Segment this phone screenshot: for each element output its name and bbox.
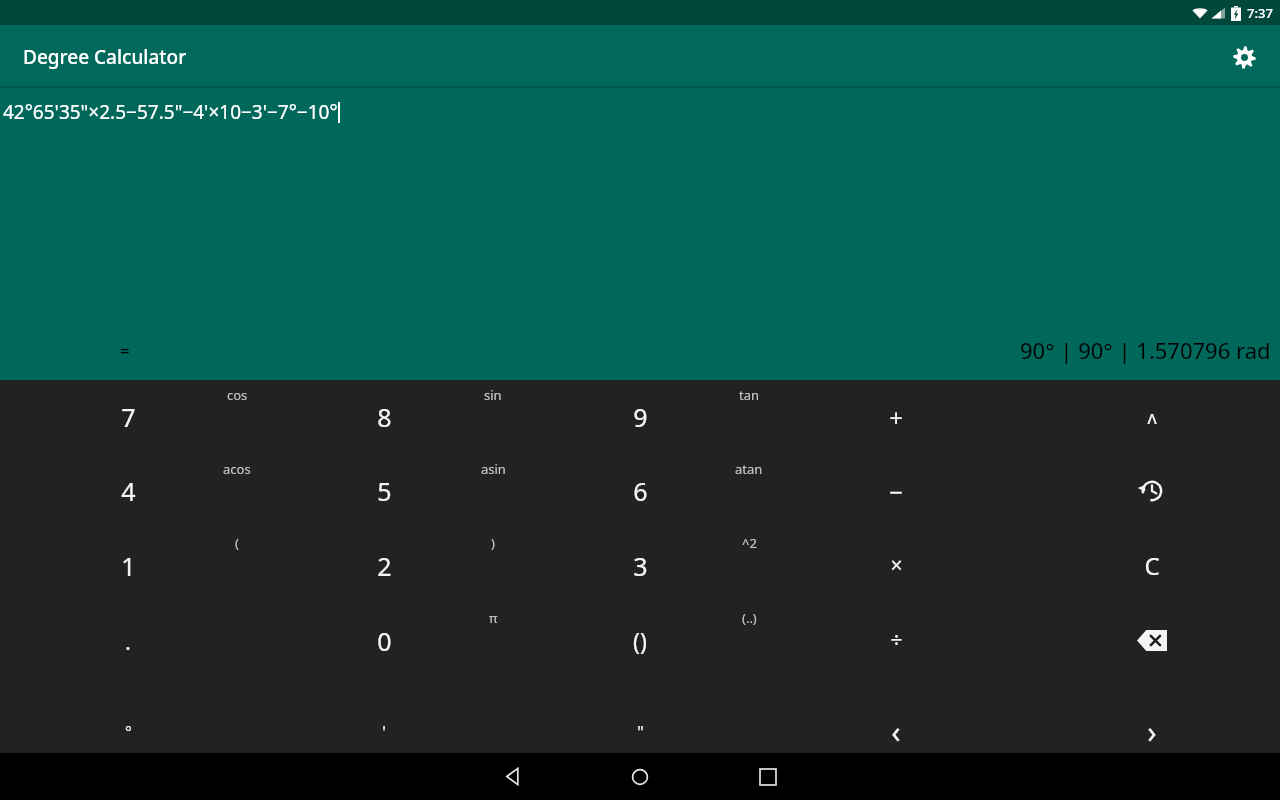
button[interactable]: . bbox=[0, 603, 256, 678]
button[interactable]: ° bbox=[0, 678, 256, 753]
button[interactable]: ʌ bbox=[1024, 380, 1280, 454]
staticText: sin bbox=[484, 386, 502, 404]
staticText: 8 bbox=[377, 400, 392, 434]
staticText: 7:37 bbox=[1247, 4, 1273, 22]
button[interactable]: sin bbox=[256, 380, 512, 454]
button[interactable]: π bbox=[256, 603, 512, 678]
staticText: ÷ bbox=[890, 626, 903, 655]
staticText: 7 bbox=[121, 400, 136, 434]
staticText: () bbox=[633, 625, 647, 656]
button[interactable]: − bbox=[768, 454, 1024, 528]
staticText: asin bbox=[481, 460, 506, 478]
staticText: ' bbox=[382, 721, 386, 743]
staticText: . bbox=[125, 626, 131, 656]
button[interactable]: ' bbox=[256, 678, 512, 753]
staticText: 2 bbox=[377, 549, 392, 583]
staticText: ^2 bbox=[742, 534, 757, 552]
staticText: × bbox=[890, 551, 903, 580]
button[interactable]: tan bbox=[512, 380, 768, 454]
button[interactable]: ÷ bbox=[768, 603, 1024, 678]
staticText: tan bbox=[739, 386, 760, 404]
button[interactable]: atan bbox=[512, 454, 768, 528]
button[interactable]: × bbox=[768, 528, 1024, 603]
button[interactable]: + bbox=[768, 380, 1024, 454]
staticText: ° bbox=[125, 721, 132, 743]
button[interactable]: ( bbox=[0, 528, 256, 603]
staticText: 3 bbox=[633, 549, 648, 583]
staticText: atan bbox=[735, 460, 763, 478]
button[interactable]: asin bbox=[256, 454, 512, 528]
staticText: π bbox=[489, 609, 498, 627]
staticText: 4 bbox=[121, 474, 136, 508]
staticText: " bbox=[637, 721, 644, 743]
button[interactable]: cos bbox=[0, 380, 256, 454]
staticText: C bbox=[1144, 549, 1160, 582]
staticText: 0 bbox=[377, 624, 392, 658]
staticText: 9 bbox=[633, 400, 648, 434]
staticText: + bbox=[889, 401, 903, 434]
staticText: = bbox=[120, 339, 130, 362]
button[interactable]: Recent apps bbox=[736, 753, 800, 800]
staticText: ) bbox=[491, 534, 495, 552]
staticText: Degree Calculator bbox=[23, 44, 187, 70]
button[interactable]: acos bbox=[0, 454, 256, 528]
staticText: ( bbox=[235, 534, 239, 552]
staticText: 6 bbox=[633, 474, 648, 508]
button[interactable]: ‹ bbox=[768, 678, 1024, 753]
button[interactable]: " bbox=[512, 678, 768, 753]
staticText: cos bbox=[227, 386, 248, 404]
button[interactable]: Backspace bbox=[1024, 603, 1280, 678]
staticText: ‹ bbox=[891, 711, 901, 752]
staticText: 5 bbox=[377, 474, 392, 508]
button[interactable]: Home bbox=[608, 753, 672, 800]
button[interactable]: (..) bbox=[512, 603, 768, 678]
button[interactable]: › bbox=[1024, 678, 1280, 753]
staticText: 42°65'35"×2.5−57.5"−4'×10−3'−7°−10° bbox=[3, 99, 338, 125]
staticText: 1 bbox=[121, 549, 136, 583]
staticText: ʌ bbox=[1147, 405, 1157, 430]
staticText: − bbox=[889, 475, 903, 508]
button[interactable]: C bbox=[1024, 528, 1280, 603]
button[interactable]: ^2 bbox=[512, 528, 768, 603]
button[interactable]: History bbox=[1024, 454, 1280, 528]
button[interactable]: ) bbox=[256, 528, 512, 603]
button[interactable]: Back bbox=[480, 753, 544, 800]
staticText: › bbox=[1147, 711, 1157, 752]
staticText: acos bbox=[223, 460, 251, 478]
staticText: 90° | 90° | 1.570796 rad bbox=[1020, 335, 1271, 365]
staticText: (..) bbox=[742, 609, 757, 627]
button[interactable]: Settings bbox=[1226, 39, 1262, 75]
